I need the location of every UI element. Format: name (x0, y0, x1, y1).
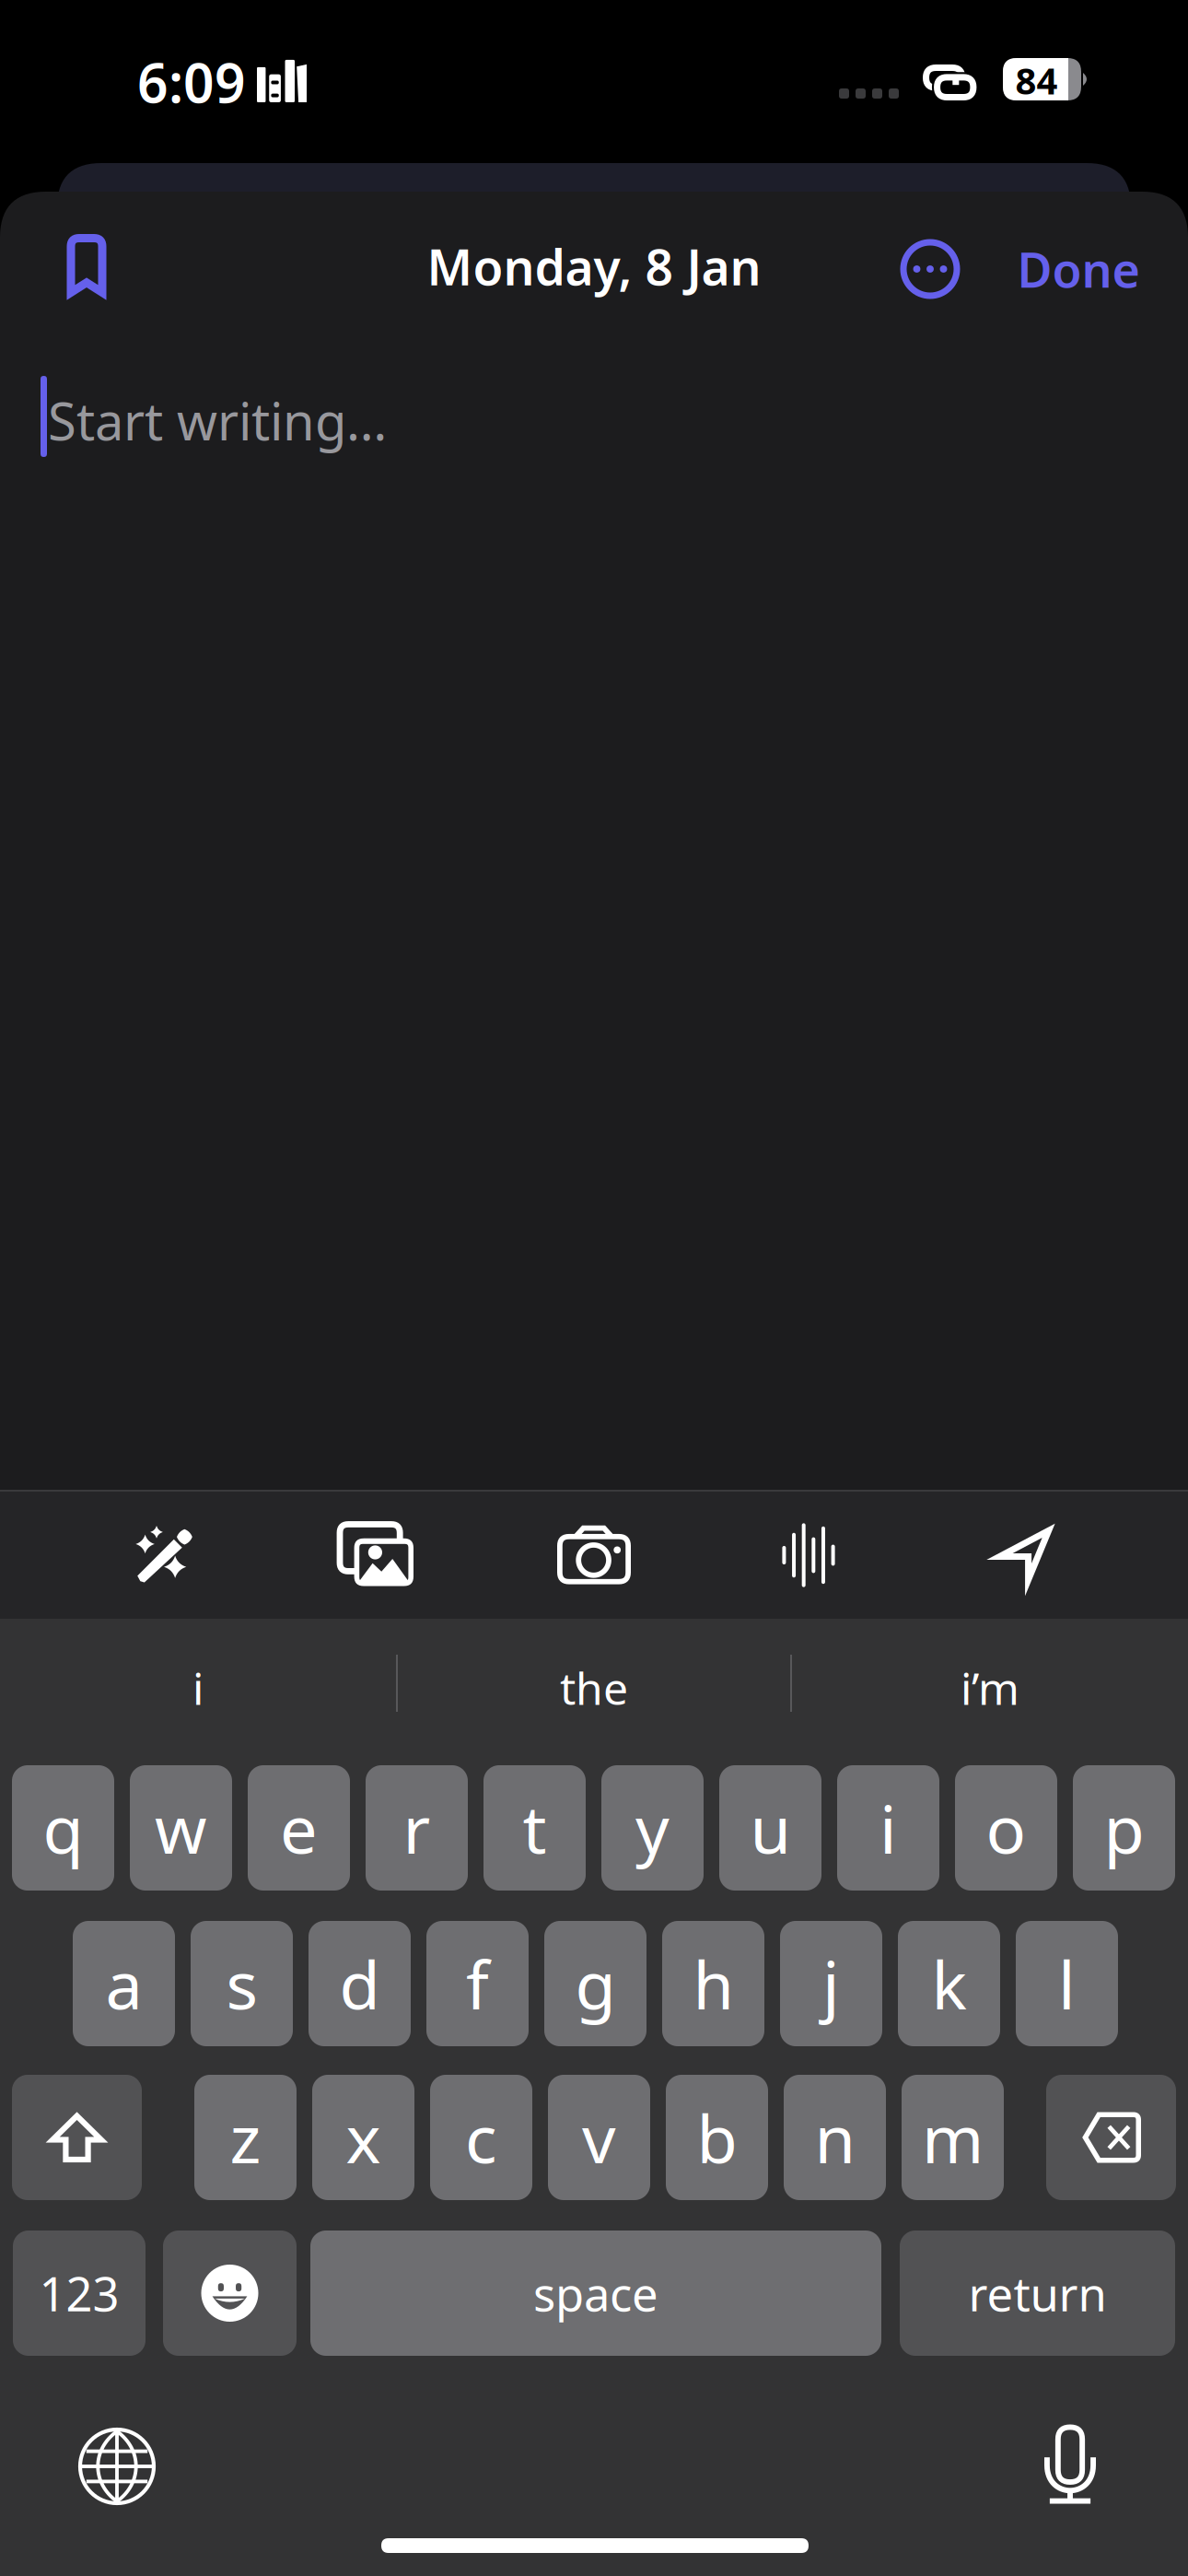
button[interactable]: m (902, 2075, 1004, 2200)
button[interactable]: Next keyboard (57, 2406, 177, 2526)
button[interactable]: Done (0, 192, 166, 280)
button[interactable]: i’m (792, 1624, 1188, 1751)
button[interactable]: n (784, 2075, 886, 2200)
button[interactable]: b (666, 2075, 768, 2200)
staticText: f (466, 1940, 489, 2028)
button[interactable]: j (780, 1921, 882, 2046)
staticText: Monday, 8 Jan (427, 234, 761, 299)
button[interactable]: x (312, 2075, 414, 2200)
button[interactable]: z (194, 2075, 297, 2200)
staticText: t (523, 1784, 547, 1872)
button[interactable]: Camera (487, 1492, 701, 1619)
staticText: y (635, 1784, 670, 1872)
button[interactable]: a (73, 1921, 175, 2046)
staticText: n (815, 2093, 855, 2181)
staticText: 6:09 (137, 46, 246, 118)
staticText: i (192, 1658, 204, 1717)
button[interactable]: i (837, 1765, 939, 1891)
staticText: l (1058, 1940, 1076, 2028)
button[interactable]: i (0, 1624, 396, 1751)
staticText: a (105, 1940, 142, 2028)
staticText: 84 (1015, 56, 1058, 105)
button[interactable]: return (900, 2231, 1175, 2356)
button[interactable]: Audio recording (701, 1492, 916, 1619)
button[interactable]: f (426, 1921, 529, 2046)
button[interactable]: r (366, 1765, 468, 1891)
staticText: b (697, 2093, 737, 2181)
staticText: c (465, 2093, 497, 2181)
button[interactable]: t (483, 1765, 586, 1891)
button[interactable]: g (544, 1921, 646, 2046)
button[interactable]: q (12, 1765, 114, 1891)
button[interactable]: Shift (12, 2075, 142, 2200)
button[interactable]: p (1073, 1765, 1175, 1891)
button[interactable]: h (662, 1921, 764, 2046)
staticText: r (403, 1784, 431, 1872)
staticText: q (43, 1784, 83, 1872)
button[interactable]: Location (917, 1492, 1131, 1619)
button[interactable]: s (191, 1921, 293, 2046)
button[interactable]: o (955, 1765, 1057, 1891)
button[interactable]: v (548, 2075, 650, 2200)
staticText: Done (1017, 237, 1140, 301)
button[interactable]: l (1016, 1921, 1118, 2046)
button[interactable]: c (430, 2075, 532, 2200)
staticText: Start writing… (48, 386, 387, 455)
button[interactable]: Emoji (163, 2231, 297, 2356)
button[interactable]: Dictation (1010, 2405, 1130, 2524)
staticText: d (339, 1940, 380, 2028)
staticText: k (932, 1940, 967, 2028)
staticText: o (986, 1784, 1026, 1872)
button[interactable]: 123 (13, 2231, 146, 2356)
button[interactable]: d (309, 1921, 411, 2046)
staticText: u (750, 1784, 791, 1872)
button[interactable]: the (396, 1624, 792, 1751)
button[interactable]: w (130, 1765, 232, 1891)
staticText: 123 (39, 2262, 119, 2324)
staticText: i’m (961, 1658, 1019, 1717)
button[interactable]: More options (0, 192, 88, 280)
button[interactable]: Delete (1046, 2075, 1176, 2200)
staticText: g (575, 1940, 616, 2028)
button[interactable]: Bookmark (0, 192, 88, 280)
staticText: s (226, 1940, 257, 2028)
staticText: space (533, 2262, 658, 2324)
button[interactable]: k (898, 1921, 1000, 2046)
button[interactable]: y (601, 1765, 704, 1891)
button[interactable]: Formatting (58, 1492, 272, 1619)
staticText: x (346, 2093, 381, 2181)
staticText: p (1104, 1784, 1144, 1872)
staticText: j (822, 1940, 840, 2028)
staticText: h (693, 1940, 734, 2028)
button[interactable]: space (310, 2231, 881, 2356)
button[interactable]: Photos (269, 1492, 484, 1619)
staticText: z (230, 2093, 261, 2181)
button[interactable]: u (719, 1765, 821, 1891)
staticText: v (582, 2093, 616, 2181)
staticText: return (968, 2262, 1106, 2324)
staticText: w (155, 1784, 207, 1872)
staticText: e (280, 1784, 318, 1872)
staticText: m (922, 2093, 984, 2181)
button[interactable]: e (248, 1765, 350, 1891)
staticText: the (560, 1658, 628, 1717)
staticText: i (879, 1784, 897, 1872)
